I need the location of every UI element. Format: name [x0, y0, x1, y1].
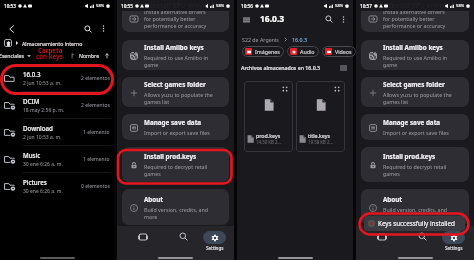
staticText: Manage save data: [144, 118, 202, 127]
button[interactable]: Music: [0, 146, 114, 172]
staticText: Build version, credits, and more: [383, 206, 448, 220]
button[interactable]: Manage save data: [361, 114, 469, 140]
staticText: Import or export save files: [144, 129, 210, 136]
button[interactable]: 16.0.3: [292, 36, 307, 43]
staticText: Nombre: [79, 52, 100, 59]
button[interactable]: Search: [405, 227, 439, 246]
staticText: 2 elementos: [81, 102, 110, 109]
staticText: Install alternative drivers for potentia…: [383, 11, 446, 29]
staticText: Select games folder: [144, 80, 206, 89]
button[interactable]: 16.0.3: [0, 65, 114, 91]
staticText: 30 ene 6:26 a. m.: [23, 188, 63, 195]
staticText: 19.58 KB 2...: [308, 139, 334, 145]
staticText: Settings: [445, 245, 463, 251]
staticText: 2 elementos: [81, 75, 110, 82]
staticText: 2 jun 10:53 a. m.: [23, 80, 62, 87]
staticText: Install prod.keys: [383, 152, 436, 161]
staticText: Required to decrypt retail games: [383, 163, 447, 177]
staticText: Install GPU driver: [389, 1, 447, 10]
staticText: title.keys: [308, 132, 330, 139]
staticText: Install GPU driver: [150, 1, 208, 10]
button[interactable]: Manage save data: [122, 114, 229, 140]
button[interactable]: Install alternative drivers for potentia…: [361, 11, 469, 32]
staticText: Audio: [300, 48, 315, 55]
button[interactable]: Games: [365, 227, 399, 246]
staticText: Download: [23, 124, 53, 132]
button[interactable]: Root: [4, 39, 12, 47]
staticText: 0 elementos: [81, 183, 110, 190]
staticText: 58%: [96, 3, 105, 9]
staticText: Allows yuzu to populate the games list: [144, 91, 213, 105]
staticText: 1 elemento: [83, 129, 110, 136]
button[interactable]: Search: [166, 227, 200, 246]
staticText: 58%: [456, 3, 465, 9]
button[interactable]: Esenciales: [0, 52, 31, 59]
staticText: Imágenes: [255, 48, 280, 55]
staticText: 18 may 2:56 p. m.: [23, 107, 65, 114]
staticText: Pictures: [23, 178, 47, 186]
button[interactable]: Search: [323, 13, 335, 25]
staticText: Archivos almacenados en 16.0.3: [241, 64, 320, 71]
staticText: Build version, credits, and more: [144, 206, 209, 220]
staticText: Manage save data: [383, 118, 441, 127]
staticText: Required to use Amiibo in game: [383, 54, 448, 68]
staticText: 16.0.3: [260, 13, 285, 25]
button[interactable]: Settings: [203, 226, 226, 251]
staticText: Allows yuzu to populate the games list: [383, 91, 452, 105]
staticText: About: [383, 195, 403, 204]
staticText: Install Amiibo keys: [144, 43, 204, 52]
staticText: Required to use Amiibo in game: [144, 54, 209, 68]
button[interactable]: Select games folder: [361, 77, 469, 107]
button[interactable]: About: [122, 189, 229, 225]
button[interactable]: S22 de Argenis: [242, 36, 279, 43]
staticText: Esenciales: [0, 52, 24, 59]
staticText: 58%: [335, 3, 344, 9]
button[interactable]: Install alternative drivers for potentia…: [122, 11, 229, 32]
button[interactable]: Install Amiibo keys: [122, 40, 229, 70]
button[interactable]: Back: [5, 22, 18, 35]
button[interactable]: prod.keys: [244, 81, 293, 152]
staticText: prod.keys: [256, 132, 281, 139]
staticText: 2 jun 10:53 a. m.: [23, 134, 62, 141]
staticText: Keys successfully installed: [378, 219, 455, 228]
staticText: About: [144, 195, 164, 204]
staticText: DCIM: [23, 97, 40, 105]
button[interactable]: More options: [98, 23, 109, 34]
staticText: 14.50 KB 2...: [256, 139, 282, 145]
button[interactable]: Keys successfully installed: [364, 216, 465, 231]
button[interactable]: DCIM: [0, 92, 114, 118]
staticText: Almacenamiento interno: [22, 40, 83, 47]
staticText: 58%: [216, 3, 225, 9]
staticText: Install prod.keys: [144, 152, 197, 161]
staticText: 10:56: [241, 3, 253, 9]
staticText: Select games folder: [383, 80, 445, 89]
button[interactable]: About: [361, 189, 469, 225]
button[interactable]: Settings: [442, 226, 465, 251]
button[interactable]: Pictures: [0, 173, 114, 199]
button[interactable]: Install prod.keys: [361, 147, 469, 182]
staticText: con keys: [36, 52, 63, 60]
button[interactable]: Search: [81, 22, 94, 35]
button[interactable]: Nombre: [71, 52, 110, 59]
staticText: Required to decrypt retail games: [144, 163, 208, 177]
staticText: Install Amiibo keys: [383, 43, 443, 52]
staticText: 16.0.3: [23, 70, 41, 78]
staticText: Settings: [206, 245, 224, 251]
staticText: Import or export save files: [383, 129, 449, 136]
staticText: 30 ene 6:26 a. m.: [23, 161, 63, 168]
button[interactable]: More options: [338, 14, 349, 25]
staticText: Videos: [335, 48, 352, 55]
button[interactable]: Install prod.keys: [122, 147, 229, 182]
button[interactable]: Games: [126, 227, 160, 246]
staticText: Music: [23, 151, 41, 159]
button[interactable]: Install Amiibo keys: [361, 40, 469, 70]
button[interactable]: Videos: [322, 46, 356, 57]
staticText: Install alternative drivers for potentia…: [144, 11, 207, 29]
button[interactable]: Menu: [241, 14, 252, 25]
button[interactable]: Imágenes: [242, 46, 284, 57]
button[interactable]: Audio: [287, 46, 319, 57]
button[interactable]: Select games folder: [122, 77, 229, 107]
button[interactable]: Download: [0, 119, 114, 145]
button[interactable]: title.keys: [296, 81, 345, 152]
button[interactable]: View mode: [339, 63, 348, 72]
